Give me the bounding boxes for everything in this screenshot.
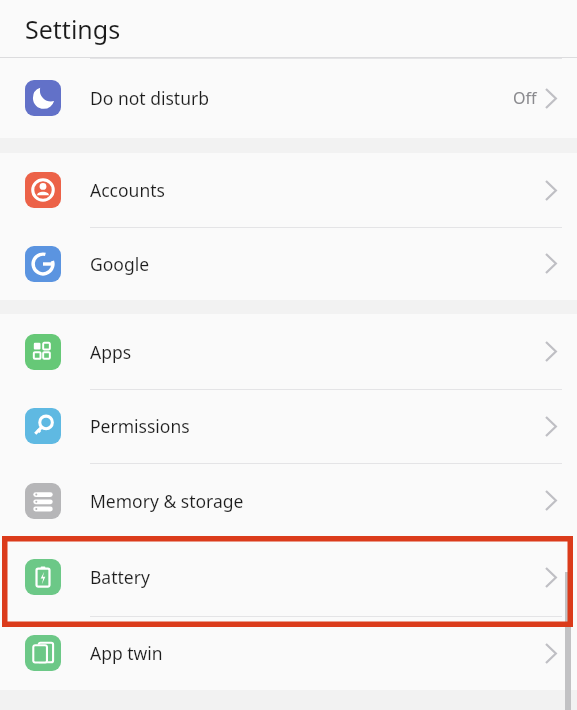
button[interactable]: App twin [0,616,577,690]
button[interactable]: Google [0,227,577,300]
staticText: Apps [90,340,546,364]
staticText: App twin [90,641,546,665]
button[interactable]: Memory & storage [0,463,577,538]
staticText: Settings [25,12,121,46]
button[interactable]: Apps [0,314,577,389]
button[interactable]: Battery [0,538,577,616]
staticText: Off [513,87,537,109]
button[interactable]: Accounts [0,153,577,227]
staticText: Battery [90,565,546,589]
staticText: Do not disturb [90,86,513,110]
button[interactable]: Permissions [0,389,577,463]
staticText: Google [90,252,546,276]
staticText: Memory & storage [90,489,546,513]
staticText: Permissions [90,414,546,438]
button[interactable]: Do not disturb [0,58,577,138]
staticText: Accounts [90,178,546,202]
